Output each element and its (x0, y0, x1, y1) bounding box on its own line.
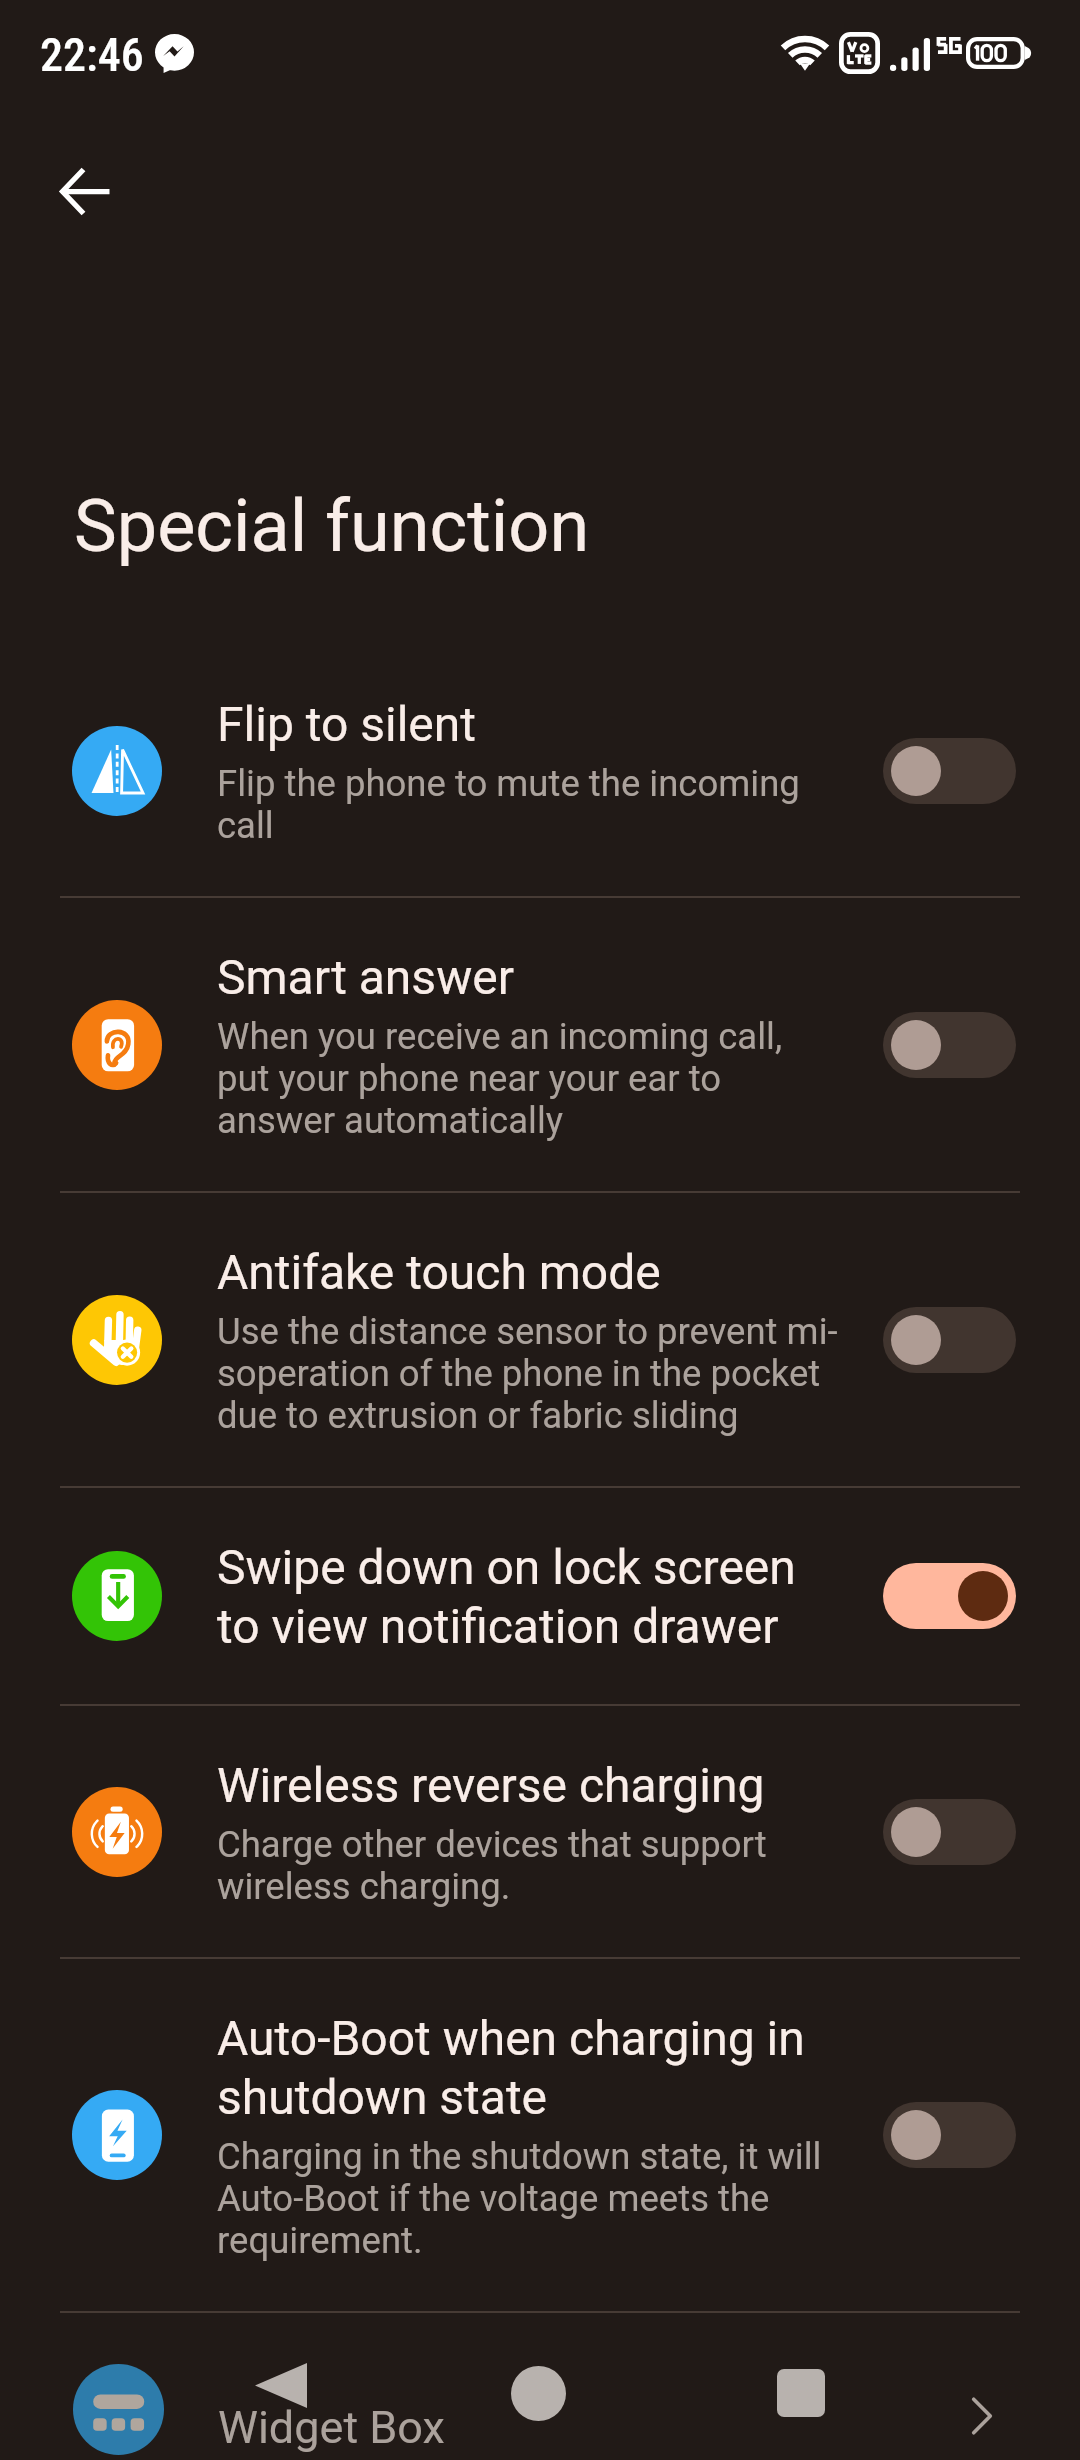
button[interactable]: Home (472, 2350, 604, 2440)
button[interactable]: Wireless reverse charging (0, 1706, 1080, 1957)
staticText: When you receive an incoming call, put y… (217, 1016, 783, 1142)
staticText: Charge other devices that support wirele… (217, 1824, 767, 1908)
button[interactable]: Switch off (883, 738, 1016, 804)
staticText: Swipe down on lock screen to view notifi… (217, 1537, 796, 1655)
button[interactable]: Switch off (883, 1012, 1016, 1078)
button[interactable]: Smart answer (0, 898, 1080, 1191)
button[interactable]: Flip to silent (0, 645, 1080, 896)
button[interactable]: Switch off (883, 1307, 1016, 1373)
button[interactable]: Recents (735, 2350, 867, 2440)
button[interactable]: Back (38, 143, 134, 239)
staticText: Wireless reverse charging (217, 1755, 765, 1814)
staticText: Charging in the shutdown state, it will … (217, 2136, 822, 2262)
staticText: Flip the phone to mute the incoming call (217, 763, 800, 847)
button[interactable]: Back (215, 2350, 347, 2440)
button[interactable]: Switch off (883, 2102, 1016, 2168)
button[interactable]: Auto-Boot when charging in shutdown stat… (0, 1959, 1080, 2311)
staticText: 22:46 (40, 31, 144, 81)
staticText: Use the distance sensor to prevent mi- s… (217, 1311, 838, 1437)
staticText: Special function (74, 484, 590, 568)
staticText: Auto-Boot when charging in shutdown stat… (217, 2008, 805, 2126)
staticText: Antifake touch mode (217, 1242, 661, 1301)
button[interactable]: Swipe down on lock screen to view notifi… (0, 1488, 1080, 1704)
staticText: Widget Box (218, 2402, 445, 2454)
button[interactable]: Switch on (883, 1563, 1016, 1629)
button[interactable]: Switch off (883, 1799, 1016, 1865)
staticText: Flip to silent (217, 694, 477, 753)
button[interactable]: Widget Box (0, 2313, 1080, 2460)
button[interactable]: Antifake touch mode (0, 1193, 1080, 1486)
staticText: Smart answer (217, 947, 514, 1006)
